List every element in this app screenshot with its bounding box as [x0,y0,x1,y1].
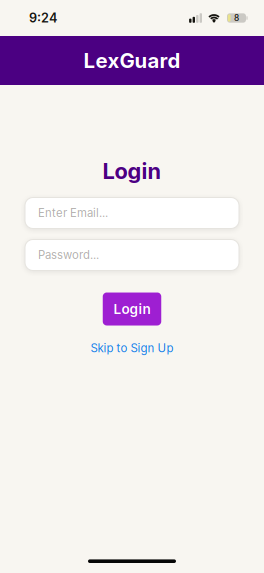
button[interactable]: Enter Email [25,197,239,228]
staticText: Enter Email... [38,206,108,220]
button[interactable]: Skip to Sign Up [90,341,173,355]
staticText: Login [113,301,150,317]
button[interactable]: Login [103,292,161,325]
staticText: 9:24 [29,10,57,26]
button[interactable]: Password [25,239,239,270]
staticText: 8 [234,13,239,23]
staticText: Password... [38,248,99,262]
staticText: Skip to Sign Up [90,341,173,355]
staticText: LexGuard [83,48,180,73]
staticText: Login [102,158,161,184]
